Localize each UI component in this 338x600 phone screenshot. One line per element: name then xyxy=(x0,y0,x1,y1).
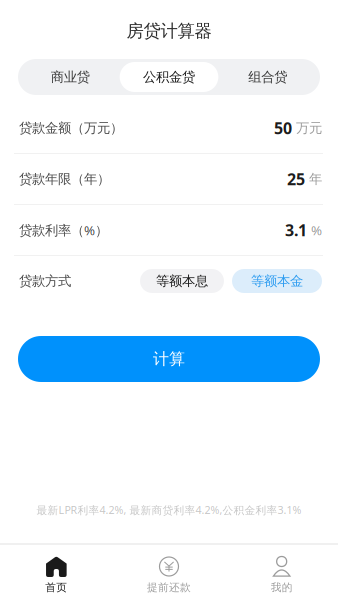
staticText: 年 xyxy=(309,171,322,187)
button[interactable]: 等额本息 xyxy=(140,269,224,293)
staticText: 商业贷 xyxy=(51,69,90,85)
button[interactable]: 计算 xyxy=(18,336,320,382)
staticText: 贷款年限（年） xyxy=(19,171,110,187)
staticText: 等额本息 xyxy=(156,273,208,289)
staticText: 首页 xyxy=(45,581,67,594)
button[interactable]: 首页 xyxy=(0,545,113,600)
staticText: 贷款利率（%） xyxy=(19,221,108,239)
staticText: 公积金贷 xyxy=(143,69,195,85)
staticText: % xyxy=(311,221,322,239)
staticText: 我的 xyxy=(271,581,293,594)
button[interactable]: 公积金贷 xyxy=(120,62,218,92)
staticText: 万元 xyxy=(296,120,322,136)
staticText: 等额本金 xyxy=(251,273,303,289)
staticText: 最新LPR利率4.2%, 最新商贷利率4.2%,公积金利率3.1% xyxy=(36,503,301,517)
staticText: 3.1 xyxy=(285,219,307,241)
button[interactable]: 等额本金 xyxy=(232,269,322,293)
staticText: 计算 xyxy=(153,349,185,369)
staticText: 贷款方式 xyxy=(19,273,71,289)
button[interactable]: 组合贷 xyxy=(218,62,317,92)
staticText: 贷款金额（万元） xyxy=(19,120,123,136)
button[interactable]: 我的 xyxy=(225,545,338,600)
button[interactable]: 商业贷 xyxy=(21,62,120,92)
staticText: 房贷计算器 xyxy=(126,20,211,42)
staticText: 提前还款 xyxy=(147,581,191,594)
staticText: 50 xyxy=(274,117,292,139)
staticText: 25 xyxy=(287,168,305,190)
button[interactable]: 提前还款 xyxy=(113,545,225,600)
staticText: 组合贷 xyxy=(248,69,287,85)
